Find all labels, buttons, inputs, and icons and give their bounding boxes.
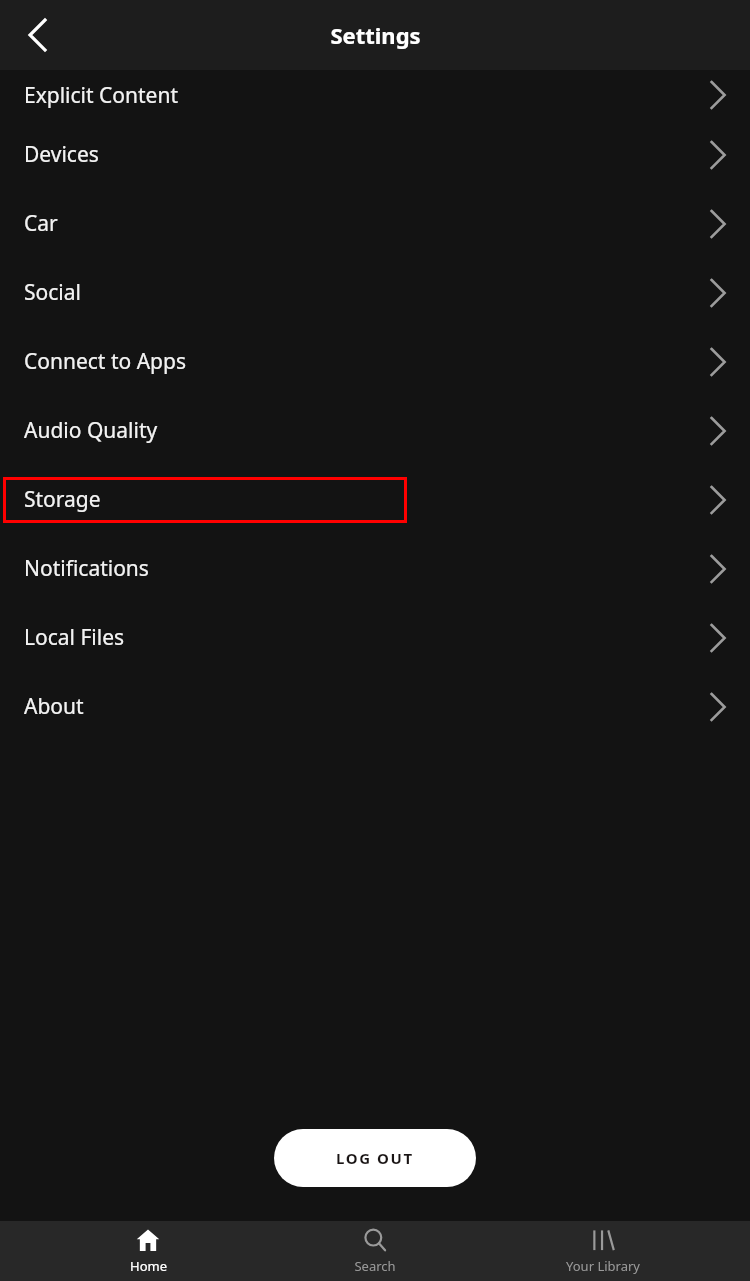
staticText: Local Files xyxy=(24,623,125,652)
button[interactable]: Social xyxy=(0,258,750,327)
staticText: About xyxy=(24,692,84,721)
staticText: Storage xyxy=(24,485,101,514)
button[interactable]: Audio Quality xyxy=(0,396,750,465)
staticText: Settings xyxy=(330,20,421,50)
staticText: LOG OUT xyxy=(336,1148,414,1168)
button[interactable]: Devices xyxy=(0,120,750,189)
button[interactable]: Local Files xyxy=(0,603,750,672)
button[interactable]: LOG OUT xyxy=(274,1129,476,1187)
button[interactable]: Notifications xyxy=(0,534,750,603)
button[interactable]: Car xyxy=(0,189,750,258)
button[interactable]: Home xyxy=(68,1221,228,1281)
staticText: Social xyxy=(24,278,81,307)
staticText: Audio Quality xyxy=(24,416,158,445)
staticText: Notifications xyxy=(24,554,149,583)
staticText: Connect to Apps xyxy=(24,347,186,376)
button[interactable]: Storage xyxy=(0,465,750,534)
button[interactable]: Back xyxy=(0,4,62,66)
staticText: Search xyxy=(354,1257,396,1275)
staticText: Devices xyxy=(24,140,99,169)
button[interactable]: Search xyxy=(295,1221,455,1281)
button[interactable]: About xyxy=(0,672,750,741)
staticText: Home xyxy=(130,1257,167,1275)
staticText: Your Library xyxy=(566,1257,640,1275)
button[interactable]: Explicit Content xyxy=(0,70,750,120)
button[interactable]: Connect to Apps xyxy=(0,327,750,396)
staticText: Car xyxy=(24,209,58,238)
staticText: Explicit Content xyxy=(24,81,179,110)
button[interactable]: Your Library xyxy=(523,1221,683,1281)
